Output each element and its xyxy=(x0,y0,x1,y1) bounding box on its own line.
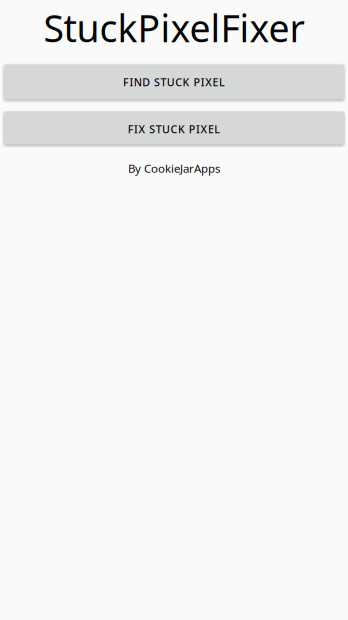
staticText: FIX STUCK PIXEL xyxy=(128,122,220,136)
staticText: By CookieJarApps xyxy=(128,161,220,176)
button[interactable]: FIX STUCK PIXEL xyxy=(4,112,344,145)
staticText: StuckPixelFixer xyxy=(43,3,304,53)
staticText: FIND STUCK PIXEL xyxy=(123,75,225,89)
button[interactable]: FIND STUCK PIXEL xyxy=(4,65,344,100)
